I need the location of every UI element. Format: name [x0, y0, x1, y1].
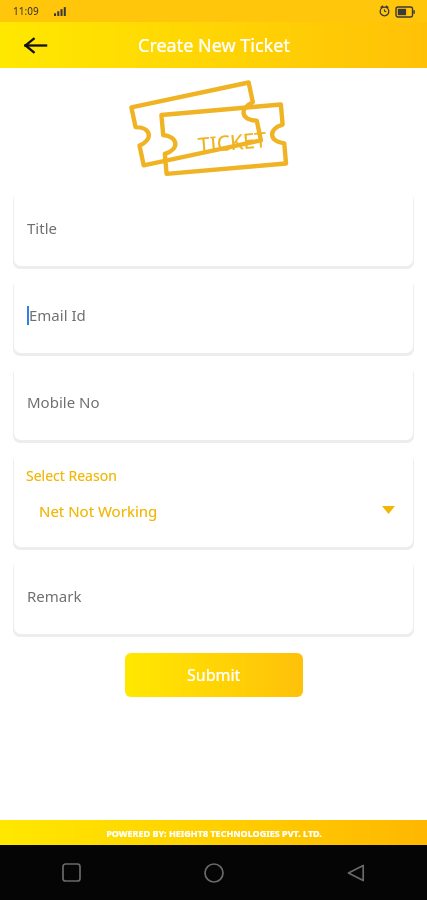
button[interactable]: Home — [143, 845, 285, 900]
staticText: Submit — [187, 664, 241, 686]
staticText: TICKET — [197, 125, 268, 160]
button[interactable]: Back — [12, 22, 58, 68]
button[interactable]: Title — [14, 190, 413, 266]
staticText: 11:09 — [13, 4, 39, 18]
staticText: Email Id — [29, 305, 86, 325]
button[interactable]: Mobile No — [14, 364, 413, 440]
button[interactable]: Select Reason — [14, 451, 413, 547]
button[interactable]: Back — [285, 845, 427, 900]
staticText: POWERED BY: HEIGHT8 TECHNOLOGIES PVT. LT… — [106, 827, 322, 839]
staticText: Select Reason — [26, 466, 117, 485]
button[interactable]: Submit — [125, 653, 303, 697]
button[interactable]: Recents — [0, 845, 143, 900]
button[interactable]: Email Id — [14, 277, 413, 353]
staticText: Remark — [27, 586, 82, 606]
button[interactable]: Open reason dropdown — [375, 497, 401, 523]
staticText: Net Not Working — [39, 501, 158, 521]
button[interactable]: Remark — [14, 558, 413, 634]
staticText: Create New Ticket — [138, 33, 290, 58]
staticText: Title — [27, 218, 57, 238]
staticText: Mobile No — [27, 392, 100, 412]
